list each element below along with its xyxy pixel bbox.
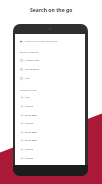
staticText: Search on the go <box>30 7 73 14</box>
button[interactable]: Bridal wear <box>15 136 85 145</box>
button[interactable]: Pink <box>15 93 85 102</box>
staticText: Bridal wear <box>25 131 38 134</box>
staticText: Pink lehenga <box>25 68 39 71</box>
staticText: Palazzo <box>25 122 34 125</box>
button[interactable]: Palazzo <box>15 119 85 128</box>
staticText: Search for products and brands <box>25 40 58 43</box>
button[interactable]: Palazzo <box>15 145 85 154</box>
button[interactable]: Bridal wear <box>15 111 85 120</box>
staticText: Palazzo <box>25 105 34 108</box>
button[interactable]: Pink <box>15 74 85 83</box>
staticText: Bridal wear <box>25 114 38 117</box>
button[interactable]: Back <box>15 37 85 46</box>
button[interactable]: Anarkali suits <box>15 56 85 65</box>
staticText: Palazzo <box>25 157 34 160</box>
staticText: TRENDING NOW <box>20 89 37 92</box>
other: Back <box>20 40 23 43</box>
staticText: Bridal wear <box>25 139 38 142</box>
button[interactable]: Bridal wear <box>15 128 85 137</box>
button[interactable]: Pink lehenga <box>15 65 85 74</box>
button[interactable]: Palazzo <box>15 102 85 111</box>
staticText: Anarkali suits <box>25 59 40 62</box>
staticText: Pink <box>25 77 30 80</box>
staticText: RECENT SEARCHES <box>20 51 39 54</box>
staticText: Pink <box>25 96 30 99</box>
button[interactable]: Palazzo <box>15 154 85 163</box>
staticText: Palazzo <box>25 148 34 151</box>
